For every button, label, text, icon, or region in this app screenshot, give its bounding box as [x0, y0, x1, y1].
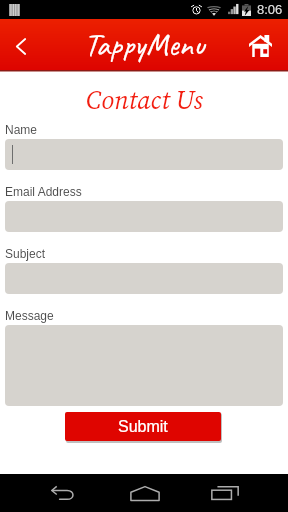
- button[interactable]: Submit: [65, 412, 221, 441]
- staticText: Subject: [5, 247, 46, 260]
- button[interactable]: Back: [38, 474, 90, 512]
- staticText: Contact Us: [86, 82, 203, 118]
- staticText: TappyMenu: [84, 24, 205, 64]
- staticText: Message: [5, 309, 54, 322]
- button[interactable]: Back: [1, 26, 41, 66]
- staticText: Name: [5, 123, 38, 136]
- button[interactable]: Home: [119, 474, 171, 512]
- staticText: Email Address: [5, 185, 82, 198]
- staticText: 8:06: [257, 2, 283, 17]
- button[interactable]: [5, 139, 283, 170]
- button[interactable]: Recent apps: [199, 474, 251, 512]
- button[interactable]: Home: [240, 26, 280, 66]
- staticText: Submit: [118, 418, 168, 436]
